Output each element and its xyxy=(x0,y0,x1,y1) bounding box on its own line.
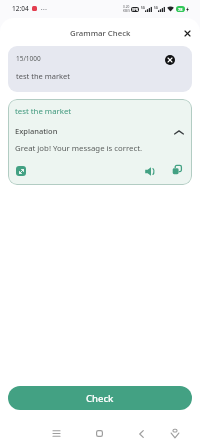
staticText: 5G xyxy=(141,6,145,10)
staticText: KB/S xyxy=(123,9,130,13)
staticText: Explanation xyxy=(15,126,58,136)
staticText: 15/1000 xyxy=(16,54,41,63)
staticText: Check xyxy=(86,392,114,405)
staticText: Great job! Your message is correct. xyxy=(15,143,143,154)
button[interactable]: Copy xyxy=(168,161,186,179)
button[interactable]: Play audio xyxy=(141,162,159,180)
button[interactable]: Expand xyxy=(16,166,26,176)
staticText: 0.20 xyxy=(123,5,130,9)
button[interactable]: Explanation xyxy=(8,123,192,139)
button[interactable]: Menu xyxy=(47,424,66,443)
staticText: Grammar Check xyxy=(70,28,131,39)
staticText: test the market xyxy=(15,106,72,117)
staticText: test the market xyxy=(16,71,70,81)
button[interactable]: Check xyxy=(8,386,192,410)
button[interactable]: Hide keyboard xyxy=(165,424,184,443)
staticText: 5G xyxy=(154,6,158,10)
staticText: VPN xyxy=(132,8,139,12)
button[interactable]: Home xyxy=(90,424,109,443)
button[interactable]: Back xyxy=(132,424,151,443)
button[interactable]: Clear text xyxy=(165,55,175,65)
staticText: 78 xyxy=(178,7,183,12)
button[interactable]: Close xyxy=(180,26,194,40)
staticText: 12:04 xyxy=(12,4,29,13)
